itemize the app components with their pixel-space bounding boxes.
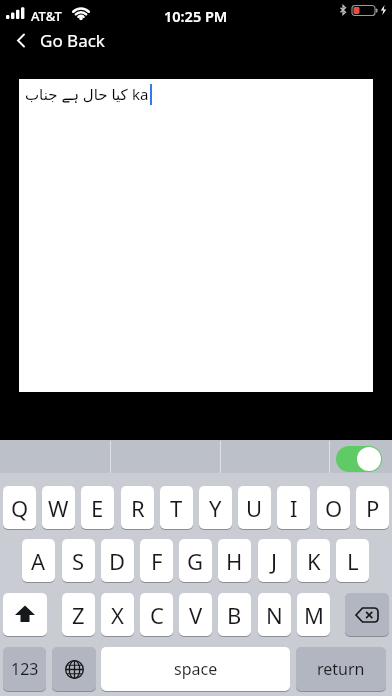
button[interactable]: K — [297, 539, 330, 583]
button[interactable]: S — [62, 539, 95, 583]
staticText: Q — [11, 493, 29, 523]
staticText: space — [174, 658, 218, 680]
button[interactable]: Q — [3, 486, 36, 530]
button[interactable]: W — [42, 486, 75, 530]
button[interactable] — [336, 446, 382, 472]
staticText: R — [131, 493, 145, 523]
staticText: M — [304, 600, 324, 630]
staticText: L — [347, 546, 359, 576]
staticText: B — [227, 600, 242, 630]
button[interactable]: A — [22, 539, 55, 583]
button[interactable]: B — [218, 593, 251, 637]
button[interactable]: H — [218, 539, 251, 583]
staticText: K — [307, 546, 321, 576]
button[interactable]: کیا حال ہے جناب — [19, 79, 373, 392]
button[interactable]: V — [179, 593, 212, 637]
button[interactable]: G — [179, 539, 212, 583]
staticText: C — [150, 600, 164, 630]
staticText: V — [189, 600, 203, 630]
staticText: X — [111, 600, 124, 630]
button[interactable]: 123 — [3, 647, 46, 692]
staticText: I — [290, 493, 298, 523]
button[interactable]: C — [140, 593, 173, 637]
button[interactable]: J — [258, 539, 291, 583]
staticText: J — [271, 546, 278, 576]
button[interactable]: Go Back — [16, 29, 105, 52]
staticText: Z — [72, 600, 85, 630]
button[interactable]: T — [160, 486, 193, 530]
button[interactable]: N — [258, 593, 291, 637]
staticText: G — [187, 546, 204, 576]
button[interactable] — [3, 593, 47, 637]
button[interactable]: L — [336, 539, 369, 583]
button[interactable]: Y — [199, 486, 232, 530]
staticText: 10:25 PM — [164, 6, 228, 26]
staticText: Y — [209, 493, 222, 523]
staticText: O — [325, 493, 343, 523]
button[interactable]: U — [238, 486, 271, 530]
button[interactable]: space — [101, 647, 290, 692]
staticText: P — [366, 493, 380, 523]
staticText: W — [48, 493, 69, 523]
staticText: return — [317, 658, 365, 680]
button[interactable] — [345, 593, 389, 637]
staticText: A — [31, 546, 46, 576]
staticText: ka — [132, 84, 149, 104]
staticText: T — [170, 493, 183, 523]
staticText: AT&T — [31, 7, 62, 25]
button[interactable]: Z — [62, 593, 95, 637]
staticText: N — [266, 600, 283, 630]
staticText: 123 — [11, 658, 39, 680]
button[interactable]: I — [277, 486, 310, 530]
staticText: D — [109, 546, 126, 576]
button[interactable]: R — [121, 486, 154, 530]
staticText: کیا حال ہے جناب — [25, 84, 128, 104]
button[interactable]: D — [101, 539, 134, 583]
button[interactable]: F — [140, 539, 173, 583]
button[interactable]: M — [297, 593, 330, 637]
button[interactable]: P — [356, 486, 389, 530]
staticText: E — [91, 493, 104, 523]
button[interactable]: O — [317, 486, 350, 530]
staticText: H — [226, 546, 243, 576]
button[interactable]: E — [81, 486, 114, 530]
button[interactable] — [52, 647, 96, 692]
staticText: S — [72, 546, 85, 576]
staticText: U — [246, 493, 263, 523]
staticText: F — [151, 546, 163, 576]
button[interactable]: return — [296, 647, 386, 692]
staticText: Go Back — [40, 29, 105, 52]
button[interactable]: X — [101, 593, 134, 637]
